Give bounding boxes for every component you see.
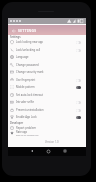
button[interactable]: Lock locking new app	[8, 38, 86, 46]
button[interactable]: Enable App Lock	[8, 113, 86, 121]
button[interactable]: Toggle Enable App Lock	[76, 116, 81, 119]
button[interactable]: Back	[28, 147, 36, 155]
staticText: Enable App Lock	[16, 115, 37, 119]
button[interactable]: Language	[8, 53, 86, 61]
staticText: Lock locking new app	[16, 40, 43, 44]
button[interactable]: Toggle Lock locking new app	[76, 41, 81, 44]
button[interactable]: Change security mark	[8, 68, 86, 76]
staticText: Prevent uninstallation	[16, 108, 44, 112]
button[interactable]: Toggle Prevent uninstallation	[76, 109, 81, 112]
button[interactable]: Toggle Use fingerprint	[76, 79, 81, 82]
staticText: Developer	[10, 121, 24, 125]
staticText: Rate us on Google Play	[16, 134, 39, 137]
staticText: Change password	[16, 63, 39, 67]
button[interactable]: Rate app	[8, 129, 86, 137]
button[interactable]: Recent apps	[61, 147, 69, 155]
button[interactable]: Change password	[8, 61, 86, 69]
staticText: Mobile pattern	[16, 85, 35, 89]
button[interactable]: Toggle Mobile pattern	[76, 86, 81, 89]
button[interactable]: Lock/unlocking call	[8, 46, 86, 54]
button[interactable]: Intruder selfie	[8, 98, 86, 106]
button[interactable]: Set auto-lock timeout	[8, 91, 86, 99]
staticText: Use fingerprint	[16, 78, 36, 82]
staticText: Version 1.0	[45, 140, 59, 144]
staticText: Report problem	[16, 126, 36, 130]
button[interactable]: Home	[44, 147, 52, 155]
staticText: SETTINGS	[18, 28, 37, 33]
staticText: Settings	[10, 35, 21, 39]
button[interactable]: Prevent uninstallation	[8, 106, 86, 114]
button[interactable]: Mobile pattern	[8, 83, 86, 91]
button[interactable]: Toggle Lock/unlocking call	[76, 49, 81, 52]
staticText: Rate app	[16, 130, 28, 134]
staticText: Language	[16, 55, 29, 59]
button[interactable]: Report problem	[8, 124, 86, 132]
staticText: Lock/unlocking call	[16, 48, 41, 52]
button[interactable]: Toggle Intruder selfie	[76, 101, 81, 104]
staticText: Change security mark	[16, 70, 44, 74]
button[interactable]: Use fingerprint	[8, 76, 86, 84]
staticText: Intruder selfie	[16, 100, 34, 104]
staticText: Set auto-lock timeout	[16, 93, 43, 97]
button[interactable]: Back	[10, 27, 17, 34]
